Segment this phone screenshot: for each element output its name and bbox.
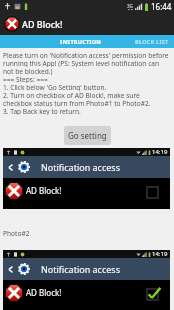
staticText: AD Block! [26, 287, 62, 298]
other: Back [6, 163, 15, 172]
button[interactable]: BLOCK LIST [118, 35, 174, 48]
staticText: 3G [127, 3, 133, 9]
staticText: checkbox status turn from Photo#1 to Pho… [3, 99, 151, 107]
button[interactable]: INSTRUCTION [44, 35, 118, 48]
staticText: BLOCK LIST [135, 38, 169, 46]
staticText: running this App! (PS: System level noti… [3, 59, 160, 67]
staticText: 14:19 [152, 148, 168, 156]
other: Back [6, 265, 15, 274]
staticText: 16:44 [151, 1, 172, 12]
staticText: Go setting [68, 130, 107, 141]
staticText: 2. Turn on checkbox of AD Block!, make s… [3, 91, 140, 99]
staticText: Please turn on 'Notification access' per… [3, 51, 169, 59]
staticText: 14:19 [152, 250, 168, 258]
staticText: 1. Click below 'Go Setting' button. [3, 83, 107, 91]
staticText: Notification access [41, 263, 120, 275]
staticText: === Steps: === [3, 75, 48, 83]
staticText: AD Block! [26, 185, 62, 196]
staticText: 3. Tap Back key to return. [3, 107, 81, 115]
staticText: not be blocked.) [3, 67, 53, 75]
staticText: AD Block! [22, 18, 63, 30]
staticText: INSTRUCTION [60, 38, 102, 46]
staticText: Notification access [41, 161, 120, 173]
button[interactable]: Go setting [64, 126, 111, 145]
staticText: Photo#2 [3, 229, 30, 237]
